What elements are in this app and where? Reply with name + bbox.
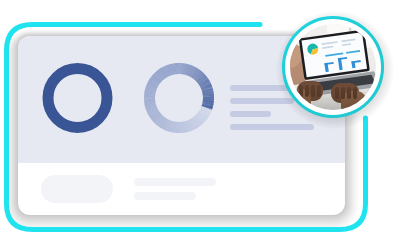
button[interactable]: Primary action button: [41, 175, 113, 203]
button[interactable]: Profile photo: [283, 17, 383, 117]
